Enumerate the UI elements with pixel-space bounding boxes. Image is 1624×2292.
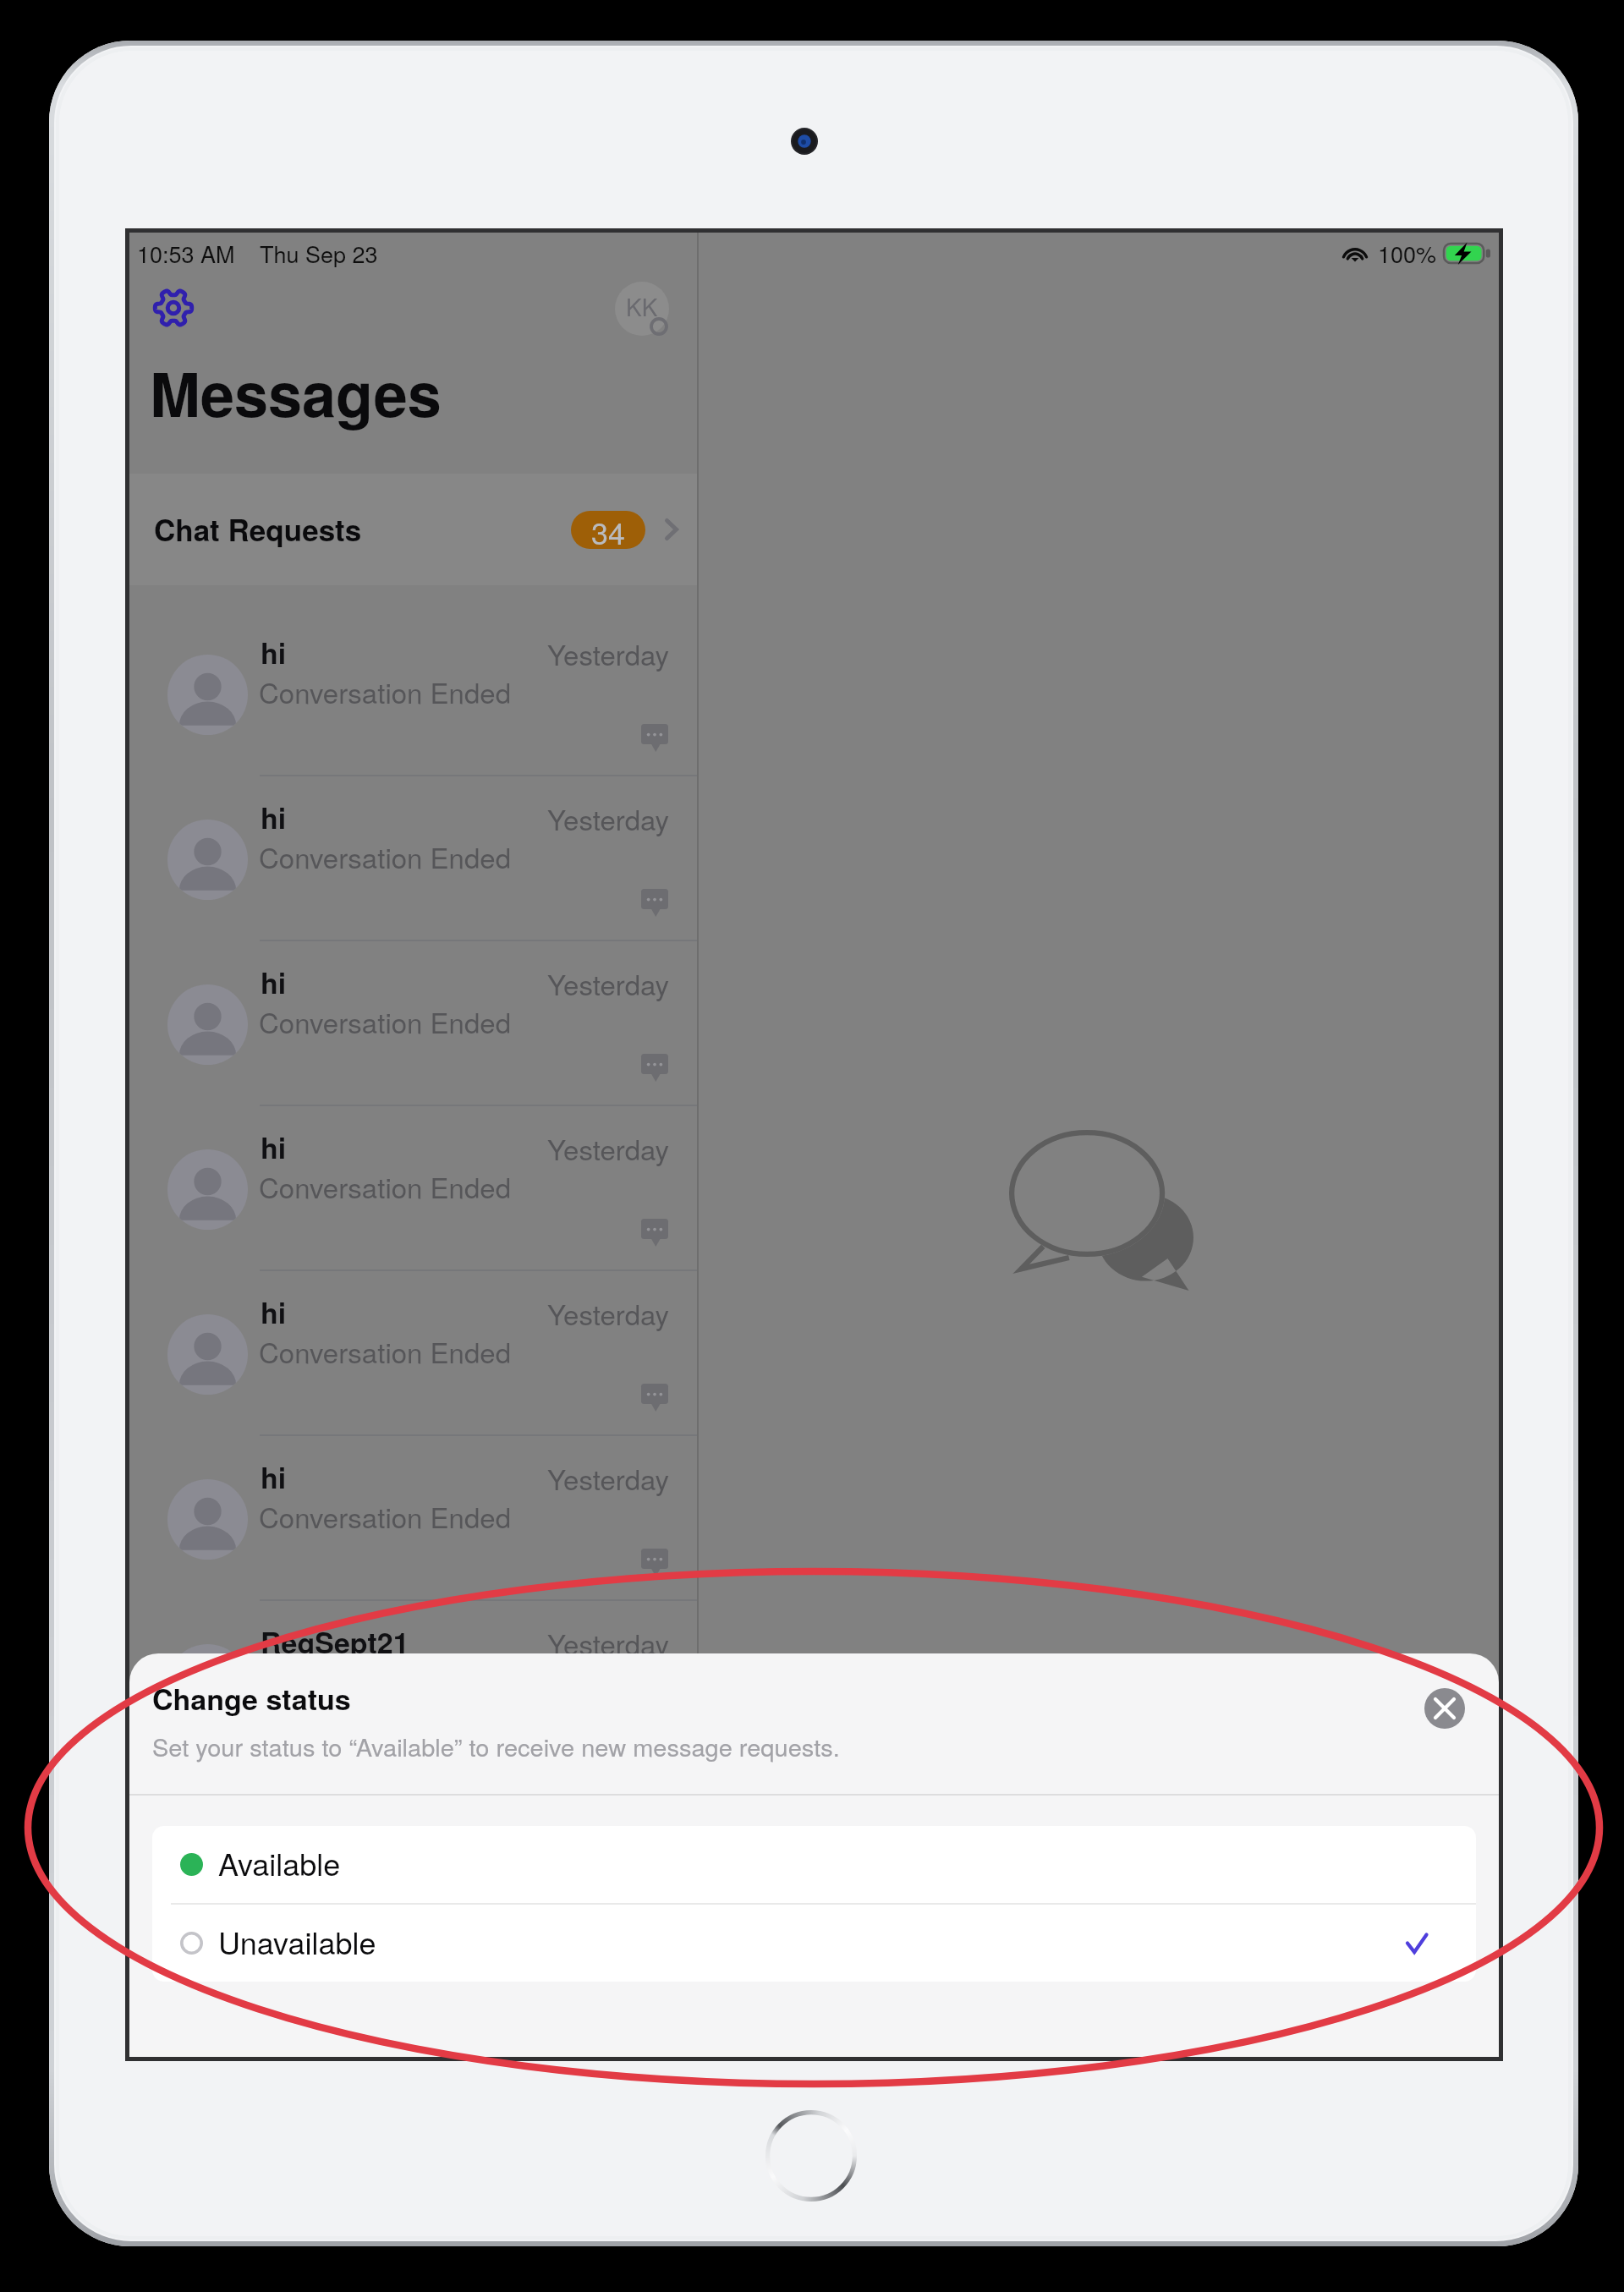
staticText: Thu Sep 23 <box>260 237 378 270</box>
staticText: Conversation Ended <box>259 1661 511 1701</box>
staticText: Yesterday <box>547 633 670 673</box>
staticText: Yesterday <box>547 963 670 1003</box>
button[interactable]: hi <box>129 1271 697 1436</box>
staticText: hi <box>261 1456 287 1498</box>
staticText: Available <box>218 1841 341 1885</box>
staticText: hi <box>261 632 287 673</box>
staticText: Conversation Ended <box>259 1166 511 1206</box>
staticText: hi <box>261 1291 287 1333</box>
staticText: Yesterday <box>547 1458 670 1498</box>
staticText: Conversation Ended <box>259 1331 511 1371</box>
button[interactable]: KK <box>615 282 669 336</box>
staticText: Conversation Ended <box>259 836 511 876</box>
staticText: hi <box>261 1127 287 1168</box>
staticText: KK <box>626 289 658 323</box>
staticText: Messages <box>150 348 442 436</box>
staticText: Chat Requests <box>154 508 362 551</box>
button[interactable]: hi <box>129 611 697 776</box>
staticText: Conversation Ended <box>259 1001 511 1041</box>
staticText: Yesterday <box>547 1293 670 1333</box>
staticText: Yesterday <box>547 1623 670 1663</box>
button[interactable]: RegSept21 <box>129 1601 697 1766</box>
staticText: Conversation Ended <box>259 1826 511 1866</box>
button[interactable]: hi <box>129 1436 697 1601</box>
staticText: Yesterday <box>547 798 670 838</box>
button[interactable]: Settings <box>152 287 195 329</box>
button[interactable]: Close <box>1424 1688 1465 1729</box>
button[interactable]: hi <box>129 1766 697 1931</box>
staticText: hi <box>261 797 287 838</box>
button[interactable]: Available <box>152 1826 1476 1903</box>
button[interactable]: hi <box>129 776 697 941</box>
button[interactable]: Unavailable <box>152 1905 1476 1982</box>
button[interactable]: Chat Requests <box>129 474 697 585</box>
staticText: Unavailable <box>218 1920 376 1964</box>
staticText: Yesterday <box>547 1128 670 1168</box>
staticText: Change status <box>152 1678 351 1719</box>
button[interactable]: hi <box>129 1106 697 1271</box>
staticText: 34 <box>591 511 626 548</box>
staticText: Conversation Ended <box>259 672 511 711</box>
staticText: 100% <box>1378 237 1437 270</box>
staticText: hi <box>261 1786 287 1828</box>
button[interactable]: hi <box>129 941 697 1106</box>
staticText: Yesterday <box>547 1788 670 1828</box>
staticText: RegSept21 <box>261 1621 409 1663</box>
staticText: hi <box>261 962 287 1003</box>
staticText: Set your status to “Available” to receiv… <box>152 1729 840 1764</box>
staticText: 10:53 AM <box>137 237 235 270</box>
staticText: Conversation Ended <box>259 1496 511 1536</box>
